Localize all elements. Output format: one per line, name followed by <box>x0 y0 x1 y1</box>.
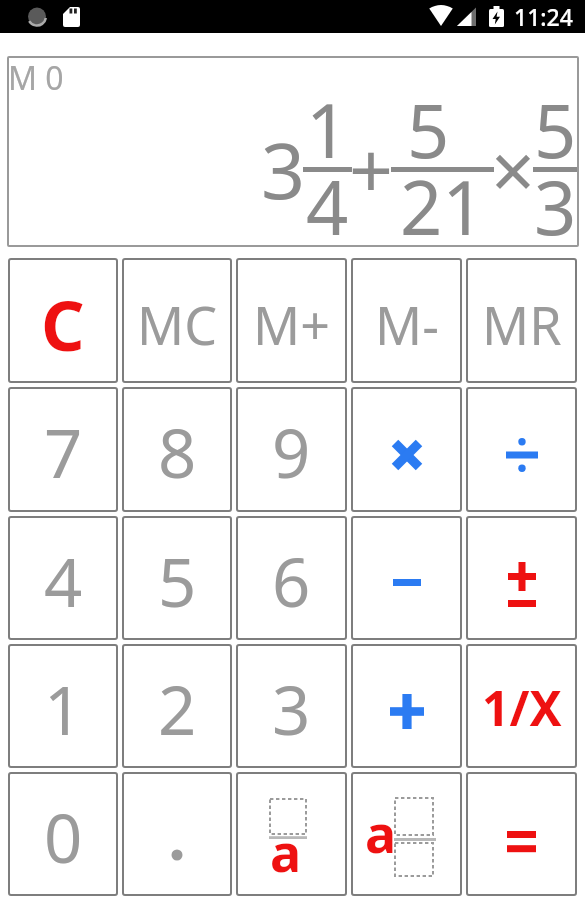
staticText: 4 <box>306 156 349 257</box>
staticText: 5 <box>534 79 577 180</box>
staticText: × <box>491 117 536 222</box>
button[interactable]: MC <box>122 258 232 383</box>
button[interactable] <box>351 644 462 768</box>
staticText: 1 <box>44 663 83 754</box>
staticText: M 0 <box>8 56 64 100</box>
button[interactable] <box>122 772 232 896</box>
button[interactable]: MR <box>466 258 577 383</box>
button[interactable]: 1 <box>8 644 118 768</box>
staticText: 21 <box>400 156 485 257</box>
staticText: C <box>41 278 85 371</box>
button[interactable]: M+ <box>236 258 347 383</box>
staticText: 11:24 <box>514 1 573 32</box>
button[interactable]: 9 <box>236 387 347 512</box>
staticText: 9 <box>272 406 311 497</box>
button[interactable]: 4 <box>8 516 118 640</box>
staticText: 1/X <box>482 675 562 740</box>
staticText: MC <box>137 289 218 360</box>
staticText: 7 <box>44 406 83 497</box>
staticText: 2 <box>158 663 197 754</box>
button[interactable]: 7 <box>8 387 118 512</box>
button[interactable] <box>466 387 577 512</box>
staticText: a <box>365 797 397 868</box>
button[interactable] <box>351 387 462 512</box>
staticText: M- <box>375 289 439 360</box>
button[interactable] <box>351 516 462 640</box>
staticText: 1 <box>306 79 349 180</box>
button[interactable]: 6 <box>236 516 347 640</box>
staticText: 4 <box>44 535 83 626</box>
button[interactable] <box>466 516 577 640</box>
button[interactable]: M- <box>351 258 462 383</box>
button[interactable]: 8 <box>122 387 232 512</box>
staticText: MR <box>482 289 562 360</box>
staticText: 5 <box>407 79 450 180</box>
button[interactable]: 2 <box>122 644 232 768</box>
button[interactable]: 1/X <box>466 644 577 768</box>
staticText: 5 <box>158 535 197 626</box>
staticText: M+ <box>253 289 330 360</box>
staticText: 3 <box>534 156 577 257</box>
button[interactable]: a <box>236 772 347 896</box>
staticText: 8 <box>158 406 197 497</box>
button[interactable]: 0 <box>8 772 118 896</box>
button[interactable]: 3 <box>236 644 347 768</box>
button[interactable]: 5 <box>122 516 232 640</box>
staticText: + <box>349 117 394 222</box>
button[interactable]: a <box>351 772 462 896</box>
button[interactable]: C <box>8 258 118 383</box>
staticText: 6 <box>272 535 311 626</box>
staticText: 0 <box>44 791 83 882</box>
staticText: 3 <box>261 117 306 222</box>
staticText: a <box>270 816 302 887</box>
staticText: 3 <box>272 663 311 754</box>
button[interactable] <box>466 772 577 896</box>
